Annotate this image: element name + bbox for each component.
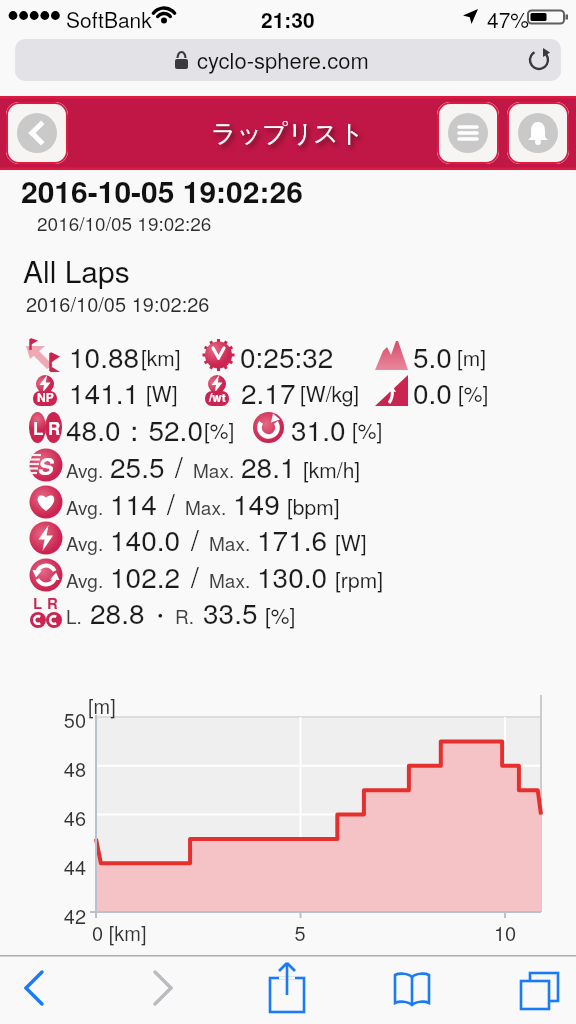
staticText: 10 <box>485 918 525 947</box>
staticText: R <box>47 592 58 613</box>
staticText: [W/kg] <box>300 378 360 408</box>
button[interactable] <box>507 102 569 164</box>
staticText: [rpm] <box>335 564 384 594</box>
staticText: 25.5 <box>110 446 165 483</box>
staticText: 21:30 <box>261 4 315 34</box>
staticText: Max. <box>193 456 235 483</box>
staticText: [%] <box>352 415 383 445</box>
button[interactable]: cyclo-sphere.com <box>15 39 561 81</box>
staticText: Max. <box>209 566 251 593</box>
staticText: L <box>33 416 44 440</box>
staticText: Avg. <box>66 566 104 593</box>
staticText: 102.2 <box>110 556 181 593</box>
staticText: ラップリスト <box>211 118 365 149</box>
staticText: 2016/10/05 19:02:26 <box>37 209 212 236</box>
button[interactable] <box>262 957 314 1017</box>
staticText: 44 <box>0 852 86 881</box>
staticText: /wt <box>209 388 226 405</box>
staticText: 0.0 <box>413 372 452 409</box>
staticText: Avg. <box>66 493 104 520</box>
staticText: [%] <box>458 378 489 408</box>
staticText: 46 <box>0 803 86 832</box>
button[interactable] <box>10 965 60 1015</box>
staticText: 2016-10-05 19:02:26 <box>21 169 303 212</box>
staticText: ・ <box>148 601 172 631</box>
staticText: 50 <box>0 705 86 734</box>
staticText: 47% <box>487 4 530 34</box>
staticText: 140.0 <box>110 519 181 556</box>
staticText: 10.88 <box>69 336 140 373</box>
staticText: [m] <box>457 342 487 372</box>
staticText: / <box>175 446 183 483</box>
staticText: L. <box>66 602 82 629</box>
staticText: Max. <box>209 529 251 556</box>
button[interactable] <box>137 965 187 1015</box>
staticText: Avg. <box>66 529 104 556</box>
button[interactable] <box>6 102 68 164</box>
staticText: 2.17 <box>241 372 296 409</box>
staticText: 0:25:32 <box>240 336 334 373</box>
staticText: NP <box>37 388 54 405</box>
staticText: 31.0 <box>291 409 346 446</box>
staticText: 149 <box>233 483 280 520</box>
staticText: 171.6 <box>257 519 328 556</box>
button[interactable] <box>387 965 439 1017</box>
staticText: 48 <box>0 754 86 783</box>
staticText: All Laps <box>23 249 130 292</box>
staticText: 28.1 <box>241 446 296 483</box>
staticText: 33.5 <box>203 592 258 629</box>
staticText: 130.0 <box>257 556 328 593</box>
staticText: 48.0：52.0 <box>66 409 203 446</box>
staticText: [km] <box>141 342 181 372</box>
staticText: [bpm] <box>287 491 340 521</box>
staticText: R <box>48 416 61 440</box>
staticText: [W] <box>335 527 367 557</box>
staticText: S <box>38 449 54 482</box>
staticText: [W] <box>146 378 178 408</box>
staticText: / <box>191 519 199 556</box>
staticText: / <box>191 556 199 593</box>
staticText: [km/h] <box>303 454 361 484</box>
staticText: 28.8 <box>90 592 145 629</box>
staticText: 42 <box>0 901 86 930</box>
button[interactable] <box>512 965 564 1017</box>
staticText: 2016/10/05 19:02:26 <box>26 289 210 318</box>
staticText: 5.0 <box>413 336 452 373</box>
staticText: Avg. <box>66 456 104 483</box>
staticText: [%] <box>265 600 296 630</box>
staticText: [m] <box>88 691 116 720</box>
staticText: 0 [km] <box>92 918 147 947</box>
staticText: SoftBank <box>66 4 152 34</box>
staticText: [%] <box>204 415 235 445</box>
staticText: cyclo-sphere.com <box>197 44 369 76</box>
staticText: L <box>33 592 43 613</box>
staticText: 114 <box>110 483 157 520</box>
button[interactable] <box>437 102 499 164</box>
staticText: 5 <box>280 918 320 947</box>
staticText: 141.1 <box>69 372 140 409</box>
staticText: Max. <box>185 493 227 520</box>
staticText: R. <box>175 602 195 629</box>
staticText: / <box>167 483 175 520</box>
